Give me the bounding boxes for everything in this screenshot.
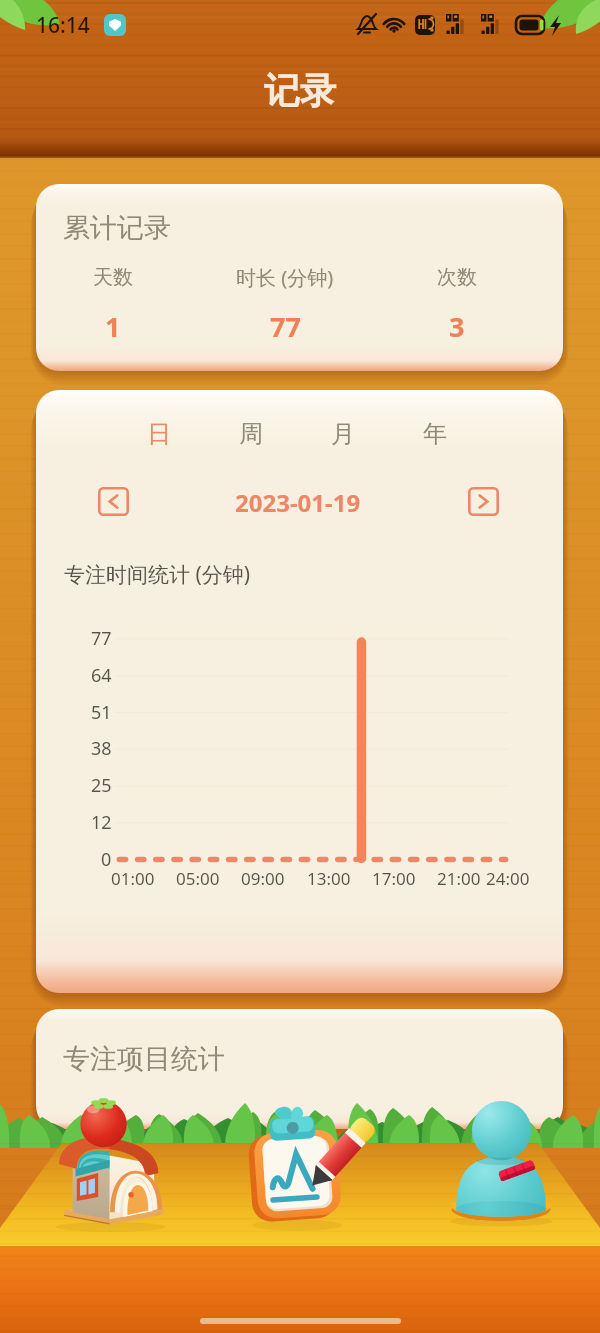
button[interactable]: 日 xyxy=(129,410,189,458)
staticText: 21:00 xyxy=(437,867,481,889)
staticText: 77 xyxy=(91,626,112,648)
staticText: 专注项目统计 xyxy=(63,1042,225,1076)
staticText: 51 xyxy=(91,700,112,722)
staticText: 13:00 xyxy=(307,867,351,889)
button[interactable]: Profile xyxy=(450,1094,552,1232)
staticText: 16:14 xyxy=(36,11,90,40)
staticText: 05:00 xyxy=(176,867,220,889)
staticText: 时长 (分钟) xyxy=(236,264,334,291)
button[interactable]: Next day xyxy=(468,487,499,516)
staticText: 日 xyxy=(147,419,171,449)
staticText: 25 xyxy=(91,773,112,795)
staticText: 64 xyxy=(91,663,112,685)
staticText: 2023-01-19 xyxy=(235,486,361,519)
staticText: 周 xyxy=(239,419,263,449)
button[interactable]: Previous day xyxy=(98,487,129,516)
staticText: 记录 xyxy=(264,68,336,113)
button[interactable]: 周 xyxy=(221,410,281,458)
staticText: 月 xyxy=(331,419,355,449)
staticText: 专注时间统计 (分钟) xyxy=(64,560,251,589)
staticText: 年 xyxy=(423,419,447,449)
staticText: 24:00 xyxy=(486,867,530,889)
staticText: 17:00 xyxy=(372,867,416,889)
staticText: 0 xyxy=(101,847,112,869)
staticText: 12 xyxy=(91,810,112,832)
button[interactable]: 月 xyxy=(313,410,373,458)
staticText: 1 xyxy=(105,308,121,344)
staticText: 累计记录 xyxy=(63,211,171,245)
staticText: 01:00 xyxy=(111,867,155,889)
staticText: 38 xyxy=(91,736,112,758)
staticText: 77 xyxy=(270,308,301,344)
staticText: 次数 xyxy=(437,265,477,290)
staticText: 3 xyxy=(449,308,465,344)
staticText: 天数 xyxy=(93,265,133,290)
button[interactable]: Records xyxy=(246,1094,374,1236)
staticText: 09:00 xyxy=(241,867,285,889)
button[interactable]: Home xyxy=(50,1094,169,1234)
button[interactable]: 年 xyxy=(405,410,465,458)
